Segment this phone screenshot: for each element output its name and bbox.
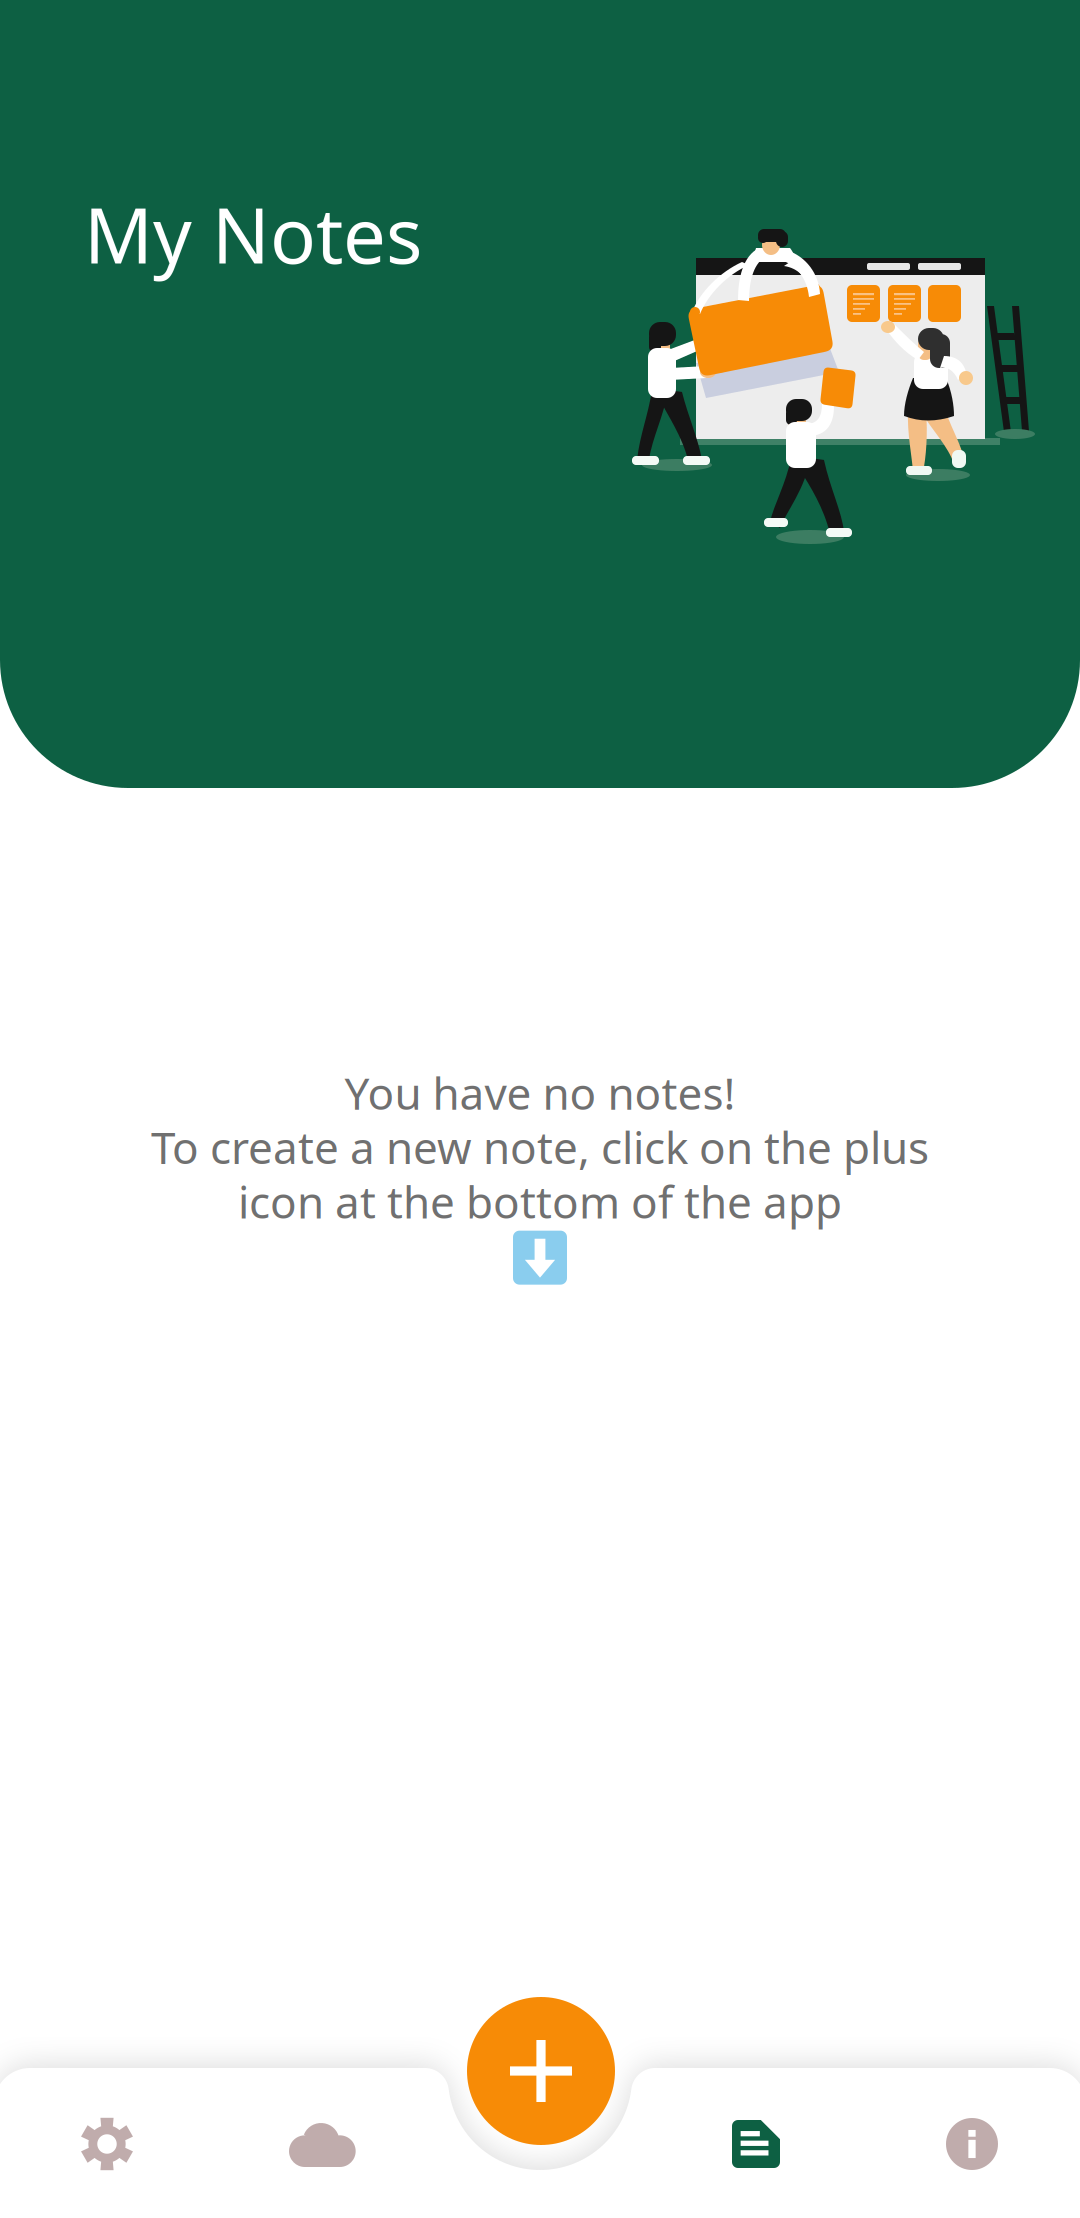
button[interactable]: Notes: [732, 2120, 780, 2168]
staticText: To create a new note, click on the plus: [151, 1118, 929, 1176]
button[interactable]: Cloud sync: [290, 2123, 356, 2167]
staticText: You have no notes!: [344, 1063, 735, 1122]
staticText: icon at the bottom of the app: [238, 1172, 842, 1231]
button[interactable]: Settings: [80, 2117, 134, 2171]
button[interactable]: About: [946, 2118, 998, 2170]
button[interactable]: Add note: [467, 1997, 615, 2145]
staticText: My Notes: [84, 183, 422, 284]
